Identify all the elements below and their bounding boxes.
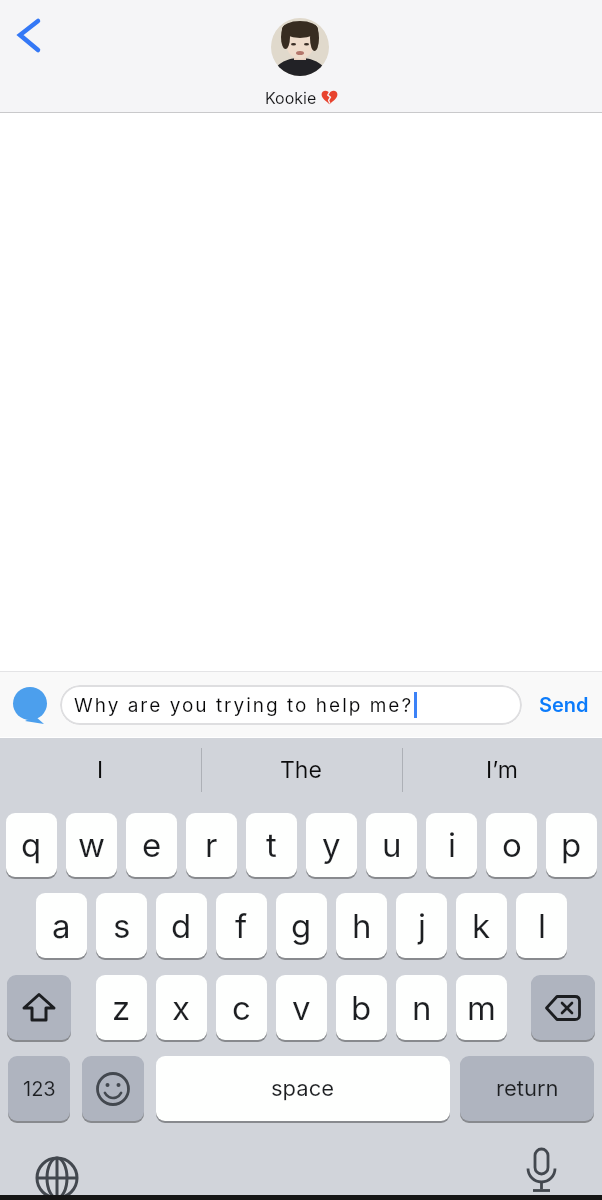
- staticText: x: [172, 988, 191, 1028]
- staticText: p: [561, 825, 582, 865]
- button[interactable]: o: [486, 813, 537, 877]
- staticText: n: [412, 988, 432, 1028]
- button[interactable]: t: [246, 813, 297, 877]
- button[interactable]: [82, 1056, 144, 1121]
- staticText: i: [448, 825, 456, 865]
- button[interactable]: u: [366, 813, 417, 877]
- staticText: return: [496, 1075, 559, 1102]
- button[interactable]: return: [460, 1056, 594, 1121]
- staticText: h: [352, 906, 372, 946]
- staticText: u: [382, 825, 402, 865]
- staticText: I: [97, 756, 104, 784]
- staticText: g: [291, 906, 312, 946]
- staticText: Send: [539, 693, 589, 717]
- staticText: I’m: [486, 756, 518, 784]
- button[interactable]: I’m: [402, 744, 602, 796]
- button[interactable]: [27, 1148, 87, 1200]
- button[interactable]: l: [516, 893, 567, 958]
- button[interactable]: [11, 686, 49, 724]
- button[interactable]: b: [336, 975, 387, 1040]
- button[interactable]: v: [276, 975, 327, 1040]
- button[interactable]: [7, 975, 71, 1040]
- staticText: space: [271, 1075, 335, 1102]
- button[interactable]: h: [336, 893, 387, 958]
- staticText: f: [235, 906, 248, 946]
- button[interactable]: space: [156, 1056, 450, 1121]
- staticText: Kookie: [265, 88, 321, 107]
- button[interactable]: q: [6, 813, 57, 877]
- button[interactable]: [517, 1147, 567, 1199]
- button[interactable]: r: [186, 813, 237, 877]
- button[interactable]: j: [396, 893, 447, 958]
- button[interactable]: Send: [530, 686, 598, 724]
- button[interactable]: x: [156, 975, 207, 1040]
- staticText: o: [502, 825, 522, 865]
- staticText: c: [232, 988, 251, 1028]
- staticText: q: [21, 825, 42, 865]
- staticText: a: [52, 906, 71, 946]
- button[interactable]: m: [456, 975, 507, 1040]
- staticText: z: [112, 988, 131, 1028]
- button[interactable]: [8, 13, 52, 57]
- staticText: k: [472, 906, 491, 946]
- staticText: Why are you trying to help me?: [74, 694, 414, 717]
- button[interactable]: [531, 975, 595, 1040]
- button[interactable]: i: [426, 813, 477, 877]
- button[interactable]: y: [306, 813, 357, 877]
- button[interactable]: f: [216, 893, 267, 958]
- staticText: v: [292, 988, 311, 1028]
- button[interactable]: w: [66, 813, 117, 877]
- button[interactable]: e: [126, 813, 177, 877]
- button[interactable]: I: [0, 744, 200, 796]
- button[interactable]: s: [96, 893, 147, 958]
- staticText: 123: [23, 1077, 56, 1101]
- button[interactable]: The: [201, 744, 401, 796]
- button[interactable]: g: [276, 893, 327, 958]
- staticText: b: [351, 988, 372, 1028]
- button[interactable]: a: [36, 893, 87, 958]
- button[interactable]: n: [396, 975, 447, 1040]
- staticText: m: [467, 988, 496, 1028]
- staticText: The: [280, 756, 322, 784]
- staticText: r: [205, 825, 218, 865]
- button[interactable]: [271, 18, 329, 76]
- staticText: j: [418, 906, 426, 946]
- staticText: y: [322, 825, 341, 865]
- button[interactable]: d: [156, 893, 207, 958]
- button[interactable]: z: [96, 975, 147, 1040]
- staticText: d: [171, 906, 192, 946]
- button[interactable]: k: [456, 893, 507, 958]
- button[interactable]: Why are you trying to help me?: [60, 685, 522, 725]
- staticText: s: [113, 906, 131, 946]
- staticText: l: [538, 906, 546, 946]
- staticText: w: [78, 825, 106, 865]
- staticText: t: [266, 825, 277, 865]
- staticText: e: [142, 825, 162, 865]
- button[interactable]: p: [546, 813, 597, 877]
- button[interactable]: 123: [8, 1056, 70, 1121]
- button[interactable]: c: [216, 975, 267, 1040]
